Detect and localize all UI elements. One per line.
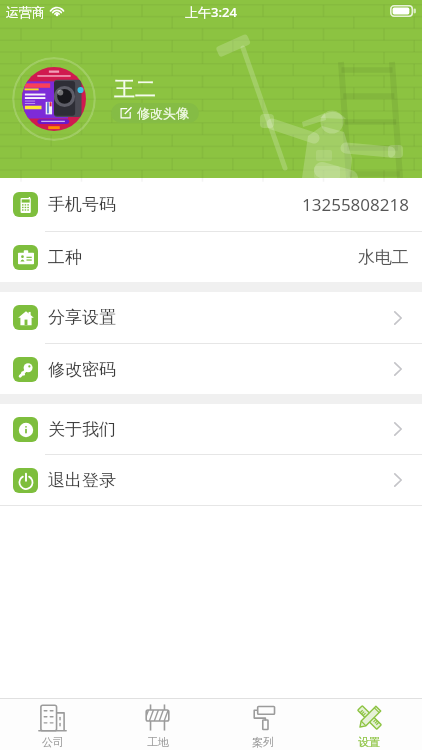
button[interactable]: 手机号码 bbox=[0, 178, 422, 231]
staticText: 关于我们 bbox=[48, 419, 116, 440]
button[interactable]: 设置 bbox=[316, 699, 422, 750]
staticText: 修改密码 bbox=[48, 359, 116, 380]
button[interactable]: 修改头像 bbox=[111, 103, 199, 123]
button[interactable]: 案列 bbox=[210, 699, 316, 750]
staticText: 工种 bbox=[48, 247, 82, 268]
button[interactable]: 公司 bbox=[0, 699, 105, 750]
staticText: 上午3:24 bbox=[185, 3, 237, 21]
staticText: 案列 bbox=[252, 735, 274, 749]
staticText: 公司 bbox=[42, 735, 64, 749]
staticText: 修改头像 bbox=[137, 105, 189, 121]
staticText: 运营商 bbox=[6, 4, 45, 20]
staticText: 退出登录 bbox=[48, 470, 116, 491]
button[interactable]: 工种 bbox=[0, 232, 422, 282]
staticText: 手机号码 bbox=[48, 194, 116, 215]
staticText: 水电工 bbox=[358, 247, 409, 268]
button[interactable]: 关于我们 bbox=[0, 404, 422, 454]
staticText: 分享设置 bbox=[48, 307, 116, 328]
button[interactable]: 分享设置 bbox=[0, 292, 422, 343]
staticText: 设置 bbox=[358, 735, 380, 749]
button[interactable]: 退出登录 bbox=[0, 455, 422, 505]
button[interactable]: Profile photo bbox=[12, 57, 96, 141]
staticText: 13255808218 bbox=[302, 193, 409, 216]
button[interactable]: 修改密码 bbox=[0, 344, 422, 394]
staticText: 王二 bbox=[114, 76, 156, 102]
staticText: 工地 bbox=[147, 735, 169, 749]
button[interactable]: 工地 bbox=[105, 699, 210, 750]
